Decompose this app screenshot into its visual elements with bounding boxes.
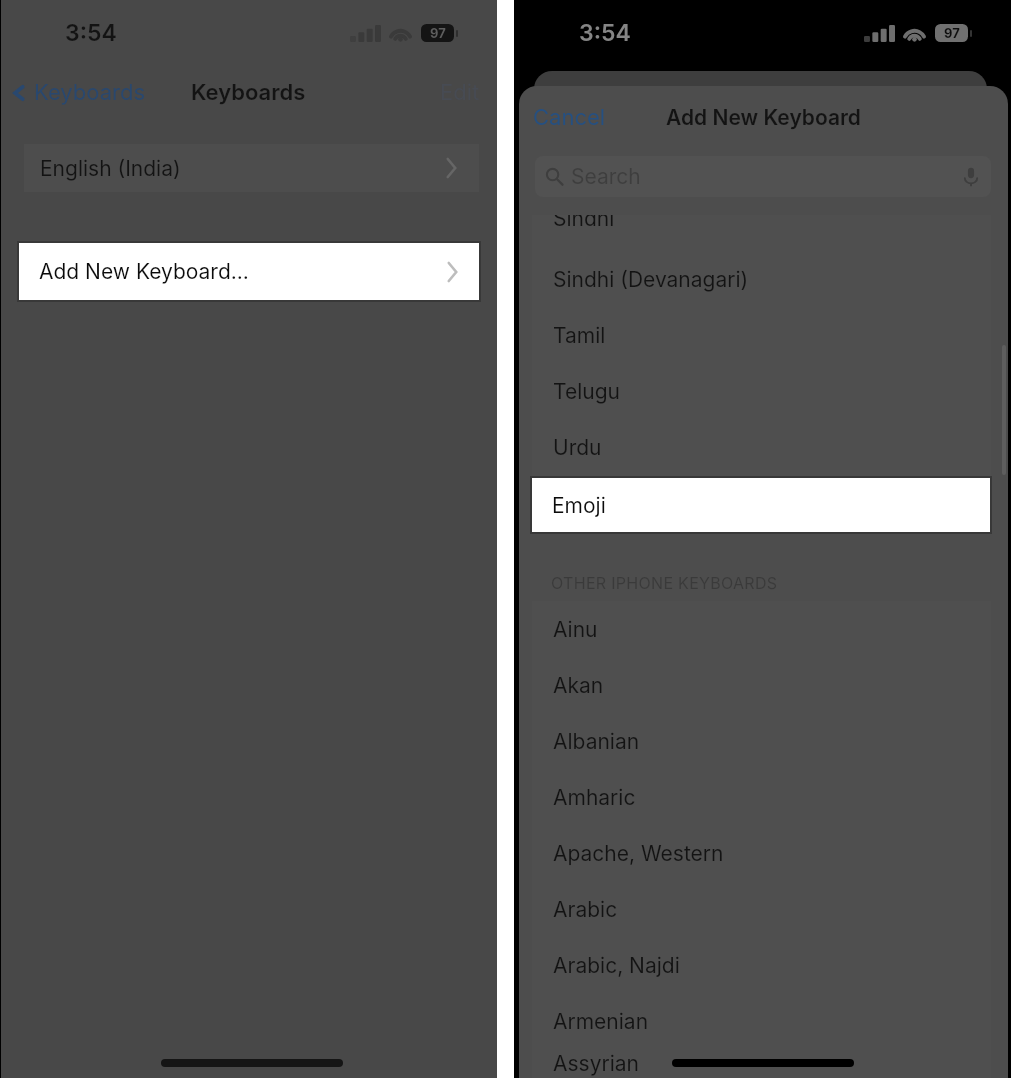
- button[interactable]: Add New Keyboard...: [18, 242, 480, 301]
- staticText: Add New Keyboard: [666, 105, 861, 130]
- button[interactable]: Cancel: [533, 104, 606, 131]
- button[interactable]: Armenian: [532, 993, 991, 1049]
- staticText: Albanian: [553, 729, 640, 754]
- button[interactable]: Emoji: [531, 477, 991, 533]
- staticText: Armenian: [553, 1009, 649, 1034]
- staticText: Sindhi: [553, 215, 615, 231]
- staticText: Apache, Western: [553, 841, 724, 866]
- staticText: OTHER IPHONE KEYBOARDS: [551, 573, 778, 592]
- staticText: 97: [430, 25, 446, 41]
- staticText: 3:54: [579, 19, 631, 47]
- button[interactable]: Akan: [532, 657, 991, 713]
- staticText: Arabic, Najdi: [553, 953, 680, 978]
- staticText: Ainu: [553, 617, 598, 642]
- button[interactable]: Albanian: [532, 713, 991, 769]
- button[interactable]: Apache, Western: [532, 825, 991, 881]
- staticText: Sindhi (Devanagari): [553, 267, 749, 292]
- button[interactable]: Keyboards: [7, 79, 146, 106]
- staticText: Assyrian: [553, 1051, 639, 1076]
- staticText: Search: [571, 164, 641, 189]
- button[interactable]: Arabic: [532, 881, 991, 937]
- staticText: Telugu: [553, 379, 620, 404]
- staticText: 3:54: [65, 19, 117, 47]
- staticText: Amharic: [553, 785, 636, 810]
- staticText: Tamil: [553, 323, 606, 348]
- button[interactable]: Edit: [440, 79, 480, 106]
- button[interactable]: Ainu: [532, 601, 991, 657]
- staticText: Emoji: [552, 493, 606, 518]
- staticText: Arabic: [553, 897, 618, 922]
- staticText: Urdu: [553, 435, 602, 460]
- button[interactable]: Urdu: [532, 419, 991, 475]
- staticText: Keyboards: [191, 79, 306, 106]
- button[interactable]: Telugu: [532, 363, 991, 419]
- button[interactable]: Sindhi (Devanagari): [532, 251, 991, 307]
- staticText: Keyboards: [34, 79, 146, 106]
- staticText: 97: [944, 25, 960, 41]
- button[interactable]: Assyrian: [532, 1049, 991, 1078]
- staticText: Akan: [553, 673, 604, 698]
- button[interactable]: Tamil: [532, 307, 991, 363]
- other: Voice search: [964, 167, 978, 187]
- staticText: English (India): [40, 156, 181, 181]
- button[interactable]: Arabic, Najdi: [532, 937, 991, 993]
- staticText: Add New Keyboard...: [39, 259, 249, 284]
- button[interactable]: Sindhi: [532, 215, 991, 251]
- button[interactable]: Amharic: [532, 769, 991, 825]
- button[interactable]: English (India): [24, 144, 479, 192]
